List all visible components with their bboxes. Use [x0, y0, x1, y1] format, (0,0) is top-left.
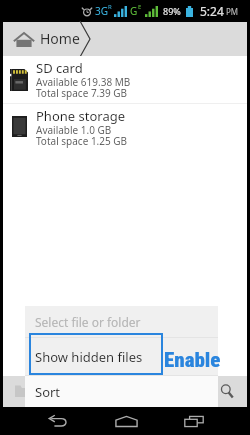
- staticText: Total space 7.39 GB: [36, 86, 128, 100]
- staticText: Select file or folder: [35, 314, 141, 330]
- button[interactable]: Back: [35, 407, 81, 435]
- staticText: Home: [40, 29, 80, 48]
- button[interactable]: Sort: [25, 376, 218, 407]
- staticText: Available 1.0 GB: [36, 123, 112, 137]
- staticText: 5:24: [200, 3, 224, 19]
- staticText: R: [108, 3, 112, 11]
- staticText: SD card: [36, 59, 83, 77]
- staticText: Show hidden files: [35, 348, 143, 366]
- button[interactable]: Home: [103, 407, 149, 435]
- staticText: Enable: [164, 348, 221, 373]
- staticText: 3G: [95, 4, 108, 18]
- staticText: G: [130, 4, 138, 18]
- staticText: 89%: [163, 5, 181, 17]
- staticText: Available 619.38 MB: [36, 75, 131, 89]
- button[interactable]: Recent apps: [171, 407, 217, 435]
- staticText: Phone storage: [36, 107, 126, 125]
- button[interactable]: Phone storage: [3, 104, 247, 151]
- button[interactable]: Search: [210, 376, 247, 407]
- button[interactable]: New folder: [3, 376, 40, 407]
- staticText: Sort: [35, 383, 61, 401]
- button[interactable]: SD card: [3, 56, 247, 103]
- staticText: PM: [226, 6, 239, 17]
- button[interactable]: Show hidden files: [25, 338, 218, 375]
- staticText: Total space 1.25 GB: [36, 134, 128, 148]
- button[interactable]: Home: [3, 22, 81, 56]
- staticText: E: [138, 3, 142, 11]
